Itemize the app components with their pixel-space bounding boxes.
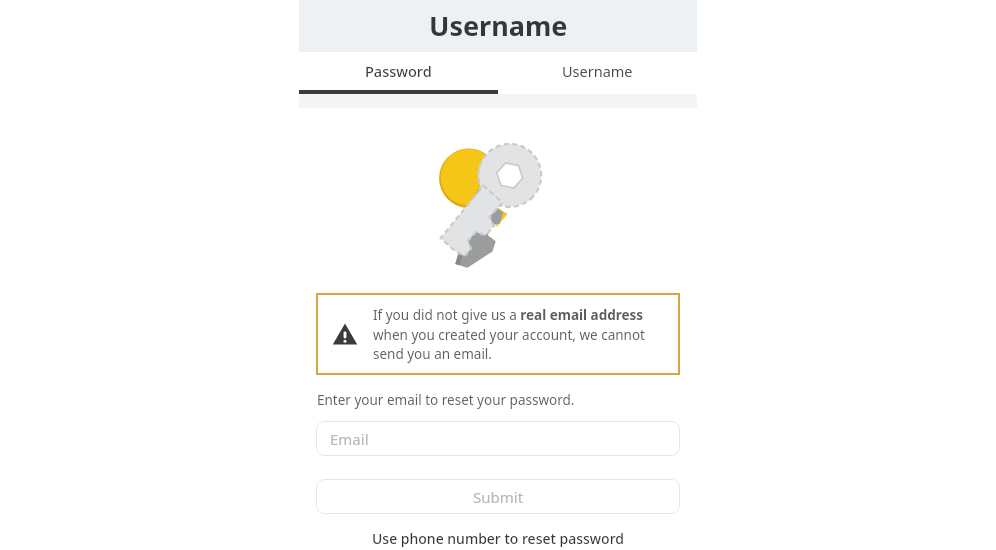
staticText: Password (365, 61, 432, 81)
button[interactable]: Use phone number to reset password (299, 529, 697, 548)
other: Warning (332, 321, 358, 347)
button[interactable]: Password (299, 52, 498, 90)
staticText: Enter your email to reset your password. (317, 391, 575, 409)
staticText: Email (330, 429, 369, 449)
staticText: If you did not give us a real email addr… (373, 306, 670, 363)
button[interactable]: Username (498, 52, 697, 90)
staticText: Submit (473, 487, 524, 507)
staticText: Username (429, 7, 568, 44)
button[interactable]: Email (316, 421, 680, 456)
staticText: Use phone number to reset password (372, 529, 624, 548)
button[interactable]: Submit (316, 479, 680, 514)
staticText: Username (562, 61, 633, 81)
